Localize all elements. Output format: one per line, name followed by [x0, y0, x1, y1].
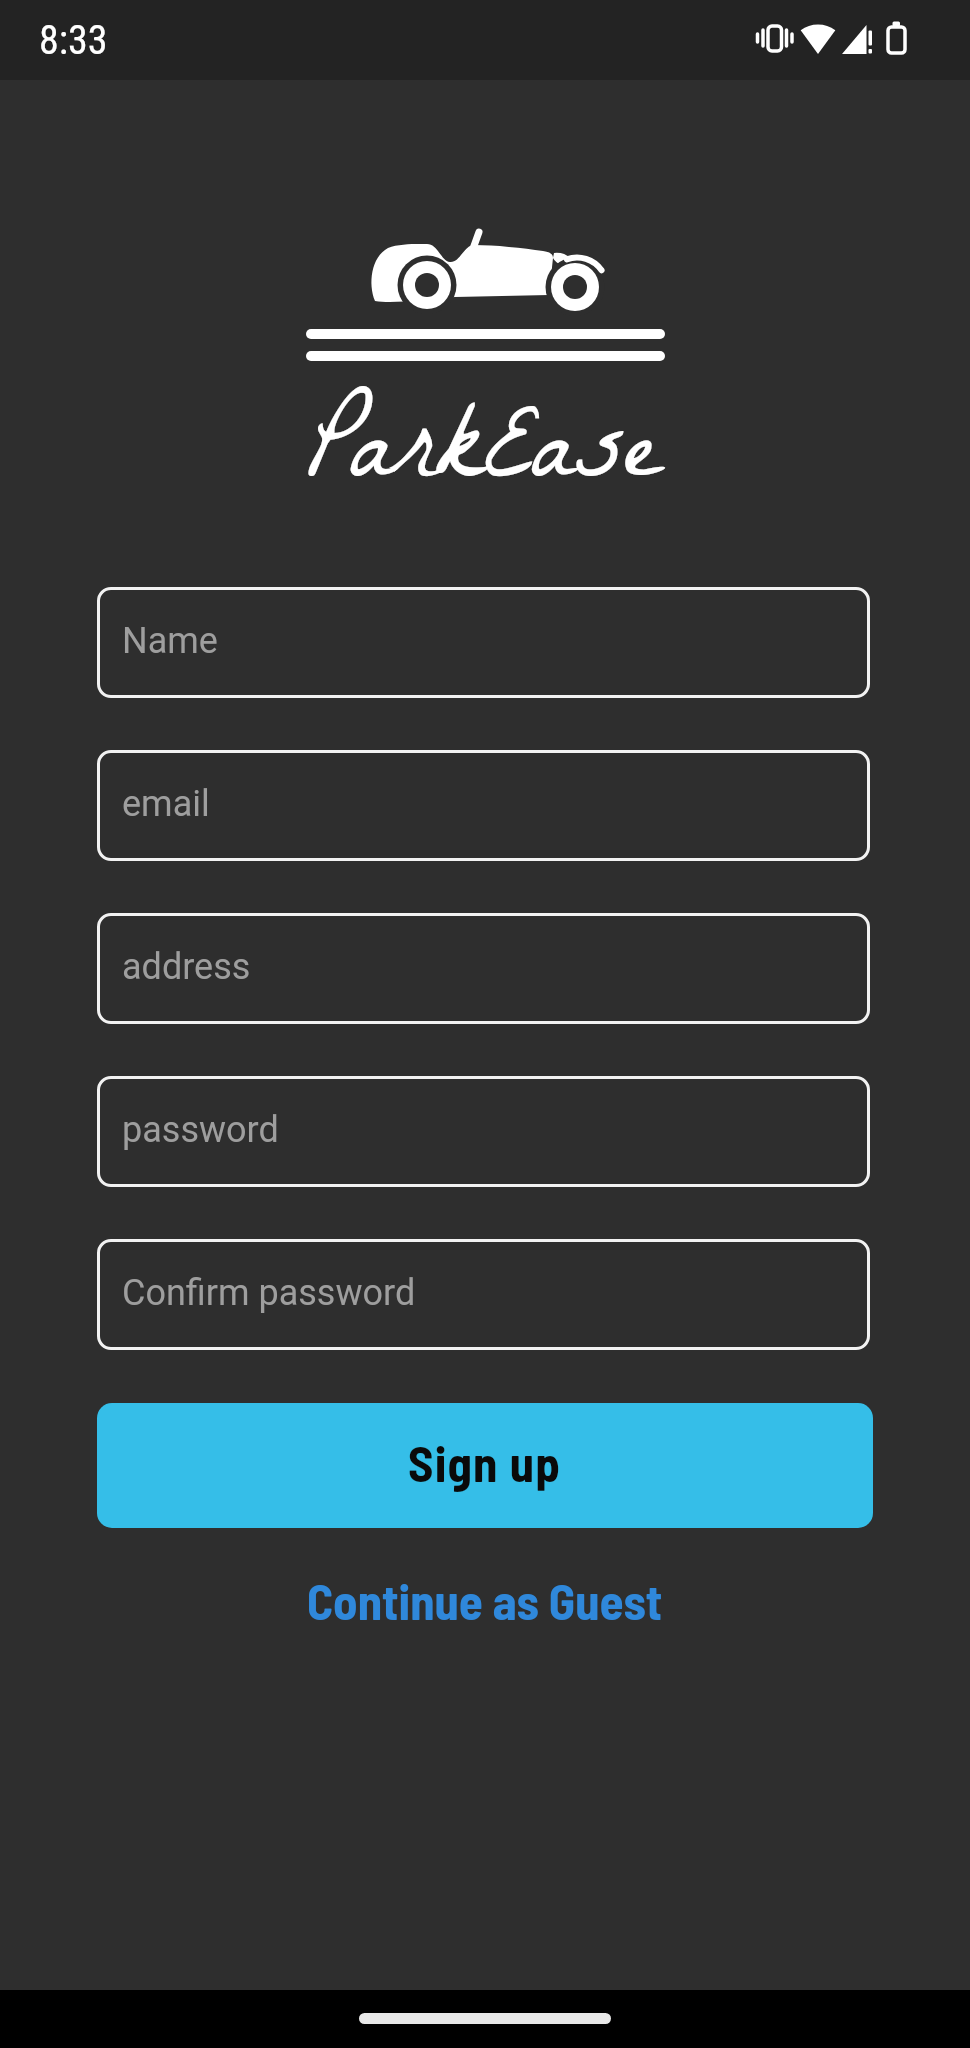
- staticText: email: [122, 783, 210, 825]
- button[interactable]: Continue as Guest: [295, 1565, 675, 1636]
- staticText: address: [122, 946, 251, 988]
- staticText: Name: [122, 620, 218, 662]
- staticText: 8:33: [39, 17, 108, 64]
- staticText: Confirm password: [122, 1272, 416, 1314]
- button[interactable]: password: [97, 1076, 870, 1187]
- staticText: Continue as Guest: [307, 1571, 663, 1630]
- staticText: Sign up: [408, 1433, 562, 1492]
- staticText: ParkEase: [308, 361, 662, 559]
- button[interactable]: email: [97, 750, 870, 861]
- button[interactable]: Sign up: [97, 1403, 873, 1528]
- staticText: password: [122, 1109, 279, 1151]
- button[interactable]: Confirm password: [97, 1239, 870, 1350]
- button[interactable]: Name: [97, 587, 870, 698]
- button[interactable]: address: [97, 913, 870, 1024]
